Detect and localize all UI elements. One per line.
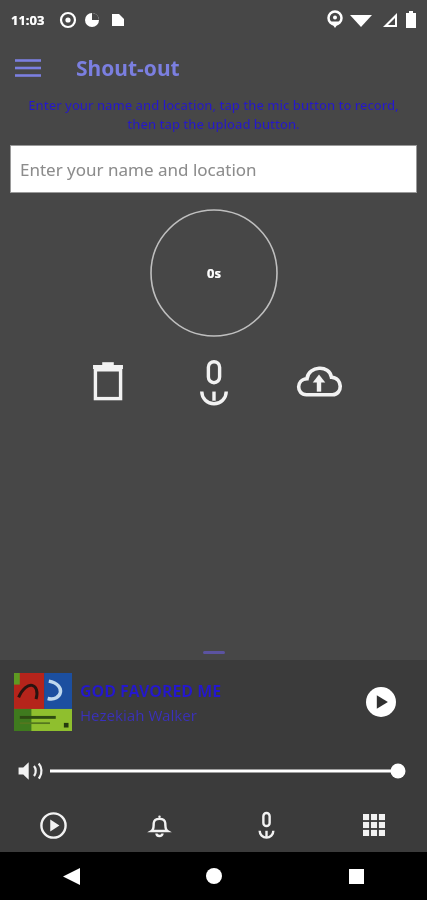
button[interactable]: More apps [320, 798, 427, 852]
button[interactable]: Player [0, 798, 106, 852]
button[interactable]: Notifications [106, 798, 213, 852]
staticText: 0s [207, 264, 221, 282]
button[interactable]: Home [143, 852, 285, 900]
button[interactable]: Back [0, 852, 143, 900]
button[interactable]: Delete recording [80, 353, 136, 409]
button[interactable]: Volume [10, 751, 50, 791]
button[interactable]: Upload recording [291, 353, 347, 409]
staticText: Enter your name and location, tap the mi… [24, 96, 403, 133]
button[interactable]: Play [359, 680, 403, 724]
button[interactable]: Recording timer [150, 209, 278, 337]
button[interactable]: Record [213, 798, 320, 852]
button[interactable]: Enter your name and location [10, 145, 417, 193]
button[interactable]: Volume slider [50, 756, 405, 786]
staticText: 11:03 [11, 11, 45, 29]
staticText: Shout-out [76, 54, 180, 83]
button[interactable]: Record with microphone [186, 353, 242, 409]
staticText: Enter your name and location [20, 158, 257, 181]
staticText: Hezekiah Walker [80, 705, 198, 725]
button[interactable]: GOD FAVORED ME [0, 660, 427, 744]
button[interactable]: Recent apps [285, 852, 427, 900]
button[interactable]: Open navigation menu [8, 48, 48, 88]
staticText: GOD FAVORED ME [80, 680, 222, 702]
